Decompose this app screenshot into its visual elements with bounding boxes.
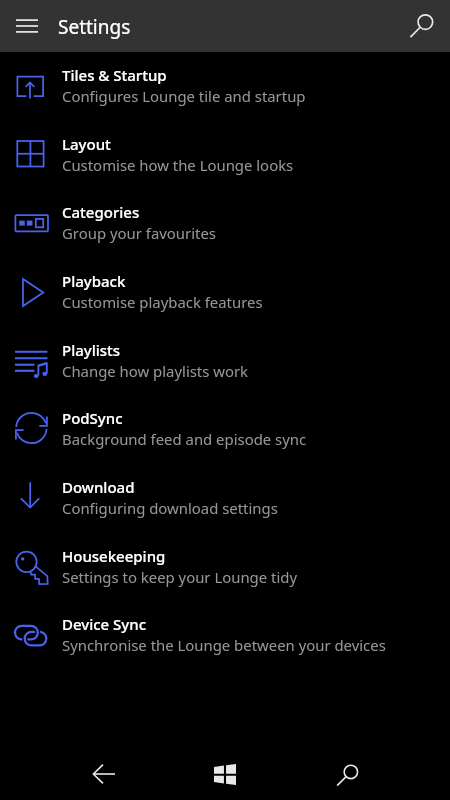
button[interactable]: Playlists bbox=[0, 337, 450, 406]
staticText: Group your favourites bbox=[62, 223, 216, 243]
staticText: Categories bbox=[62, 202, 140, 222]
staticText: Tiles & Startup bbox=[62, 65, 167, 85]
staticText: Housekeeping bbox=[62, 546, 166, 566]
staticText: Background feed and episode sync bbox=[62, 429, 307, 449]
button[interactable]: Categories bbox=[0, 199, 450, 268]
staticText: Device Sync bbox=[62, 614, 147, 634]
button[interactable]: Playback bbox=[0, 268, 450, 337]
button[interactable]: Search bbox=[398, 0, 450, 52]
button[interactable]: Tiles & Startup bbox=[0, 62, 450, 131]
button[interactable]: Download bbox=[0, 474, 450, 543]
staticText: PodSync bbox=[62, 408, 123, 428]
staticText: Playlists bbox=[62, 340, 121, 360]
staticText: Settings bbox=[58, 14, 131, 40]
button[interactable]: Device Sync bbox=[0, 611, 450, 680]
staticText: Synchronise the Lounge between your devi… bbox=[62, 635, 386, 655]
staticText: Change how playlists work bbox=[62, 361, 249, 381]
button[interactable]: Start bbox=[189, 750, 261, 798]
button[interactable]: Layout bbox=[0, 131, 450, 200]
staticText: Configuring download settings bbox=[62, 498, 278, 518]
staticText: Settings to keep your Lounge tidy bbox=[62, 567, 298, 587]
button[interactable]: Housekeeping bbox=[0, 543, 450, 612]
staticText: Configures Lounge tile and startup bbox=[62, 86, 306, 106]
staticText: Playback bbox=[62, 271, 126, 291]
button[interactable]: Menu bbox=[0, 0, 54, 52]
staticText: Customise how the Lounge looks bbox=[62, 155, 294, 175]
staticText: Customise playback features bbox=[62, 292, 263, 312]
staticText: Download bbox=[62, 477, 135, 497]
button[interactable]: Back bbox=[68, 750, 140, 798]
staticText: Layout bbox=[62, 134, 111, 154]
button[interactable]: PodSync bbox=[0, 405, 450, 474]
button[interactable]: Search bbox=[311, 750, 383, 798]
